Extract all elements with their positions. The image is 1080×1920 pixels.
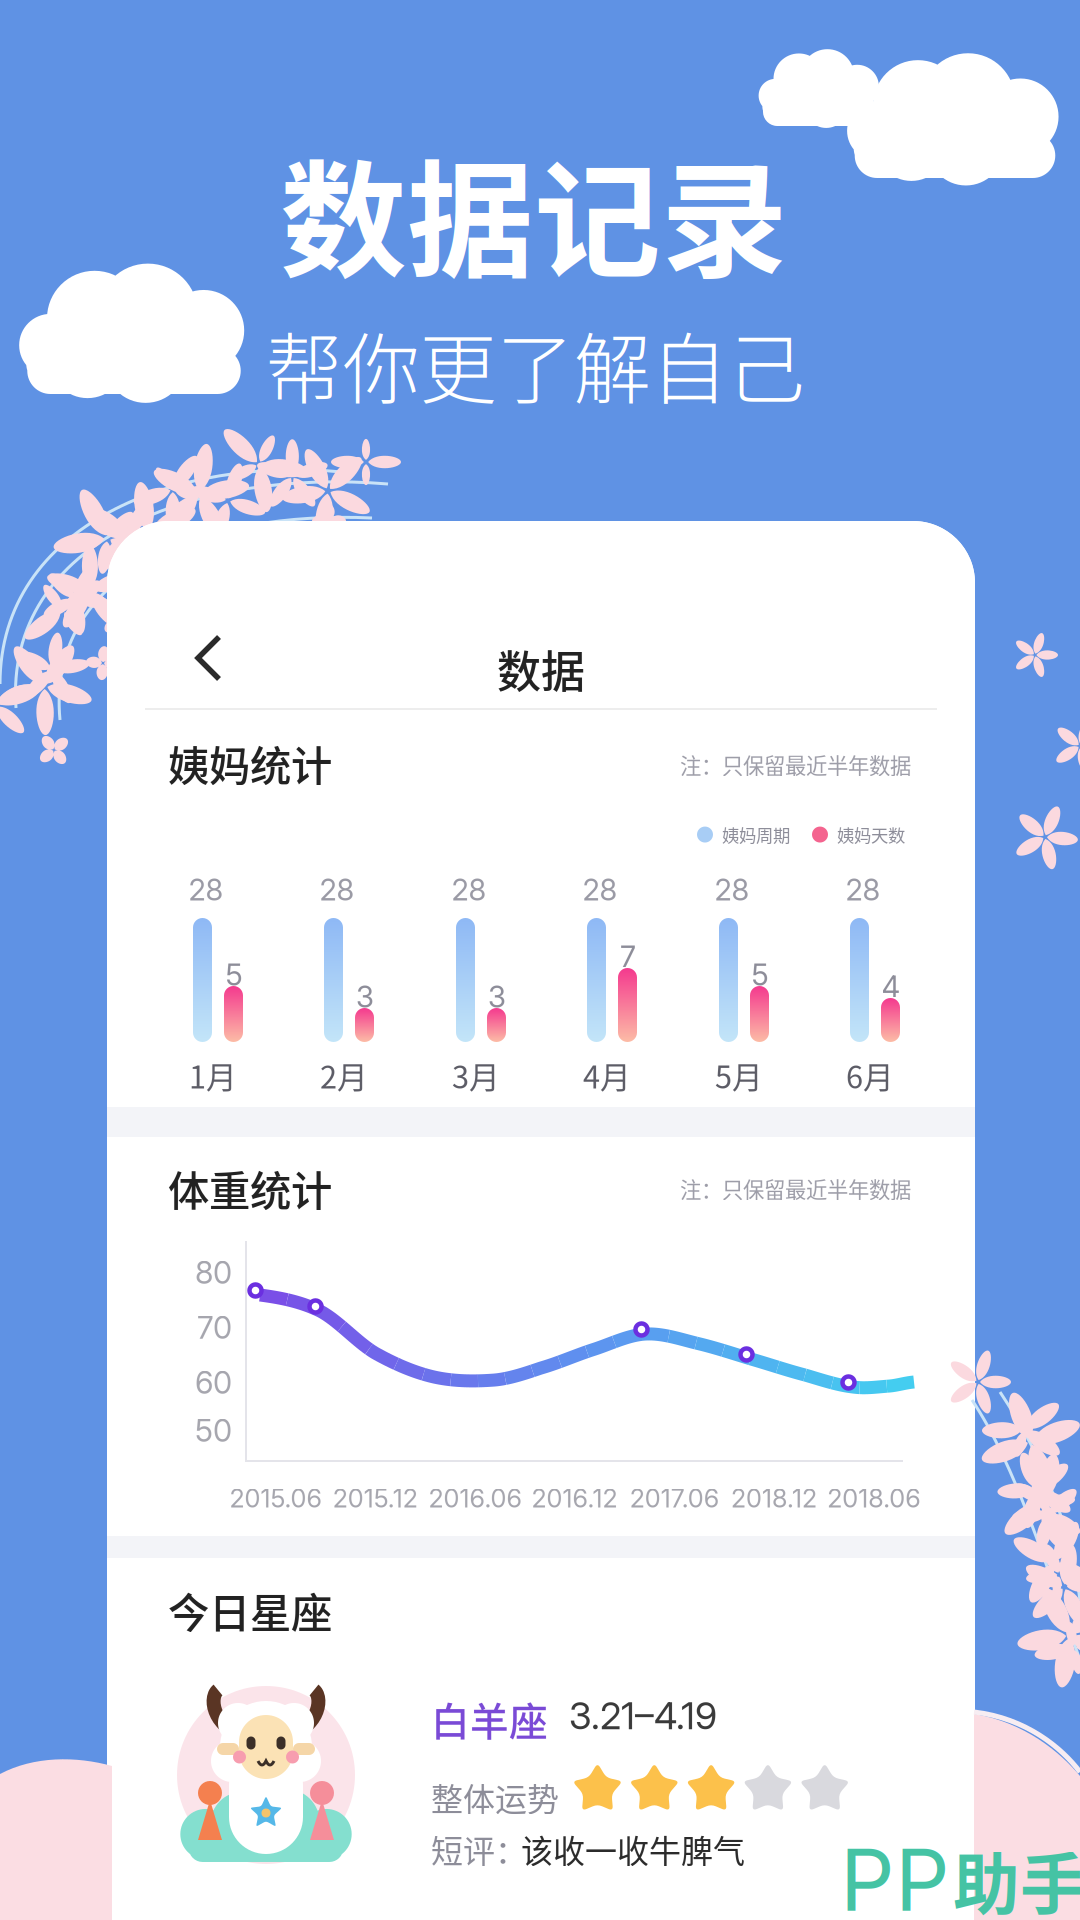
- staticText: 2016.12: [532, 1483, 618, 1514]
- staticText: 整体运势: [431, 1774, 559, 1820]
- staticText: 28: [451, 872, 486, 907]
- staticText: 今日星座: [168, 1580, 332, 1640]
- staticText: 5月: [715, 1053, 763, 1097]
- staticText: 5: [225, 957, 242, 992]
- staticText: 姨妈统计: [168, 733, 332, 793]
- staticText: 帮你更了解自己: [265, 308, 804, 420]
- staticText: 数据记录: [280, 120, 788, 303]
- staticText: 70: [197, 1309, 232, 1346]
- staticText: 数据: [497, 637, 585, 701]
- staticText: 50: [195, 1412, 232, 1449]
- staticText: 4月: [583, 1053, 631, 1097]
- button[interactable]: Back: [161, 603, 257, 715]
- staticText: PP: [840, 1828, 950, 1920]
- staticText: 助手: [953, 1831, 1080, 1920]
- staticText: 2015.12: [333, 1483, 418, 1514]
- staticText: 3月: [452, 1053, 500, 1097]
- staticText: 2018.12: [731, 1483, 817, 1514]
- staticText: 5: [751, 957, 768, 992]
- staticText: 姨妈周期: [722, 822, 790, 847]
- staticText: 注：只保留最近半年数据: [680, 1173, 911, 1204]
- staticText: 28: [319, 872, 354, 907]
- staticText: 28: [714, 872, 749, 907]
- staticText: 该收一收牛脾气: [521, 1826, 745, 1872]
- staticText: 28: [845, 872, 880, 907]
- staticText: 短评：: [431, 1826, 527, 1872]
- staticText: 白羊座: [431, 1691, 548, 1747]
- staticText: 6月: [846, 1053, 894, 1097]
- staticText: 60: [195, 1364, 232, 1401]
- staticText: 2月: [320, 1053, 368, 1097]
- staticText: 80: [195, 1254, 232, 1291]
- staticText: 2015.06: [229, 1483, 321, 1514]
- staticText: 姨妈天数: [837, 822, 905, 847]
- staticText: 28: [582, 872, 617, 907]
- staticText: 体重统计: [168, 1158, 332, 1218]
- staticText: 3: [356, 979, 374, 1014]
- staticText: 注：只保留最近半年数据: [680, 749, 911, 780]
- staticText: 2017.06: [630, 1483, 719, 1514]
- staticText: 2018.06: [827, 1483, 920, 1514]
- staticText: 3.21–4.19: [569, 1693, 717, 1738]
- staticText: 3: [488, 979, 506, 1014]
- staticText: 2016.06: [428, 1483, 521, 1514]
- staticText: 4: [881, 969, 900, 1004]
- staticText: 1月: [189, 1053, 237, 1097]
- staticText: 28: [188, 872, 223, 907]
- staticText: 7: [620, 939, 636, 974]
